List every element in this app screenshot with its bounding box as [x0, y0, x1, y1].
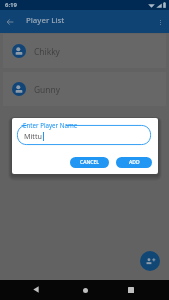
button[interactable]: Gunny: [3, 72, 166, 106]
button[interactable]: Back: [29, 282, 43, 296]
staticText: ADD: [129, 159, 140, 166]
staticText: Mittu: [24, 131, 43, 141]
staticText: CANCEL: [80, 159, 99, 166]
staticText: Enter Player Name: [23, 121, 78, 129]
button[interactable]: ADD: [116, 157, 152, 168]
staticText: Chikky: [34, 46, 60, 57]
staticText: 6:19: [5, 1, 17, 9]
button[interactable]: Chikky: [3, 34, 166, 68]
staticText: Player List: [26, 15, 65, 26]
button[interactable]: Recents: [124, 283, 138, 297]
button[interactable]: Add player: [140, 251, 160, 271]
staticText: Gunny: [34, 84, 60, 95]
button[interactable]: CANCEL: [70, 157, 109, 168]
button[interactable]: More options: [151, 13, 169, 31]
button[interactable]: Home: [78, 283, 92, 297]
button[interactable]: Navigate up: [1, 13, 19, 31]
